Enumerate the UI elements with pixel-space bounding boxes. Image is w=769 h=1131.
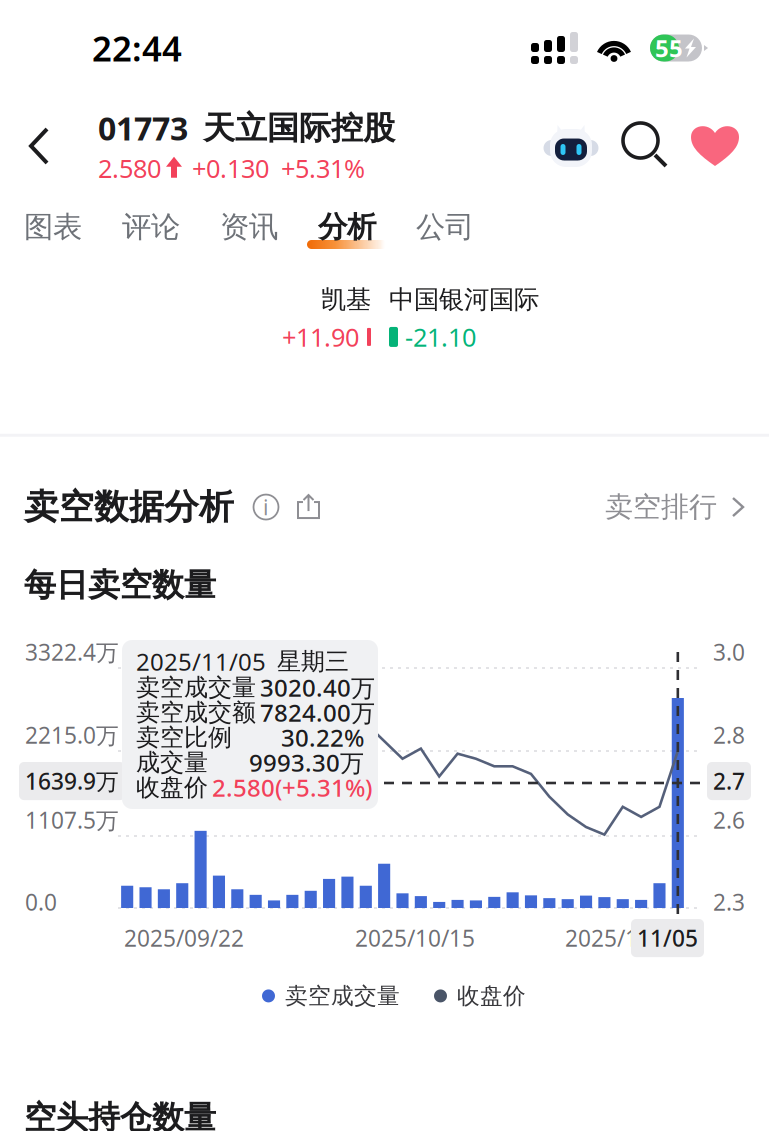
staticText: 2.8: [713, 720, 745, 750]
staticText: 11/05: [637, 923, 698, 953]
button[interactable]: 图表: [4, 198, 102, 266]
staticText: 图表: [24, 209, 82, 245]
staticText: 星期三: [277, 647, 349, 676]
button[interactable]: 评论: [102, 198, 200, 266]
staticText: 卖空成交量: [136, 673, 256, 702]
staticText: 2025/11/05: [136, 646, 266, 677]
staticText: 卖空数据分析: [24, 486, 234, 528]
staticText: 收盘价: [457, 982, 526, 1010]
button[interactable]: 资讯: [200, 198, 298, 266]
staticText: i: [263, 493, 269, 521]
staticText: 3.0: [713, 637, 745, 667]
staticText: 0.0: [25, 887, 57, 917]
staticText: 卖空成交额: [136, 698, 256, 727]
staticText: 2.3: [713, 887, 745, 917]
staticText: 中国银河国际: [389, 284, 539, 315]
staticText: 2025/10/15: [355, 923, 475, 953]
staticText: +0.130: [192, 151, 269, 185]
staticText: 天立国际控股: [203, 108, 395, 148]
staticText: 收盘价: [136, 773, 208, 802]
staticText: -21.10: [405, 320, 476, 354]
staticText: 9993.30万: [249, 747, 364, 778]
staticText: 凯基: [321, 284, 371, 315]
staticText: 2025/09/22: [124, 923, 244, 953]
staticText: 2.580(+5.31%): [212, 772, 372, 803]
staticText: +11.90: [282, 320, 359, 354]
button[interactable]: 分析: [298, 198, 396, 266]
staticText: 卖空成交量: [285, 982, 400, 1010]
staticText: 公司: [416, 209, 474, 245]
staticText: 22:44: [92, 25, 182, 71]
staticText: 2.7: [713, 766, 745, 796]
staticText: 卖空比例: [136, 723, 232, 752]
button[interactable]: Share: [296, 493, 322, 521]
staticText: 01773: [98, 107, 188, 149]
staticText: 空头持仓数量: [24, 1098, 216, 1131]
staticText: 7824.00万: [260, 697, 375, 728]
staticText: 卖空排行: [605, 490, 717, 524]
staticText: 评论: [122, 209, 180, 245]
staticText: 2.580: [98, 151, 161, 185]
staticText: 3322.4万: [25, 637, 119, 667]
staticText: 资讯: [220, 209, 278, 245]
staticText: 2025/11: [565, 923, 651, 953]
staticText: 每日卖空数量: [24, 565, 216, 605]
staticText: +5.31%: [281, 151, 365, 185]
staticText: 成交量: [136, 748, 208, 777]
button[interactable]: AI assistant: [543, 118, 599, 174]
staticText: 2215.0万: [25, 720, 119, 750]
staticText: 30.22%: [281, 722, 364, 753]
button[interactable]: Info: [252, 493, 280, 521]
staticText: 1639.9万: [25, 766, 119, 796]
button[interactable]: 卖空排行: [605, 490, 745, 524]
staticText: 55: [655, 32, 683, 64]
button[interactable]: Search: [623, 123, 669, 169]
staticText: 分析: [318, 209, 376, 245]
button[interactable]: 公司: [396, 198, 494, 266]
staticText: 2.6: [713, 805, 745, 835]
staticText: 1107.5万: [25, 805, 119, 835]
staticText: 3020.40万: [260, 672, 375, 703]
button[interactable]: Favorite: [691, 124, 739, 168]
button[interactable]: Back: [0, 109, 98, 183]
